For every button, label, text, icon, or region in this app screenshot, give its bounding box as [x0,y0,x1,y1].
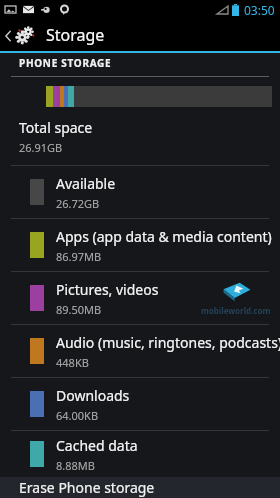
staticText: Pictures, videos [56,280,159,299]
button[interactable]: Total space [0,118,280,155]
staticText: Erase Phone storage [19,478,155,497]
staticText: Downloads [56,386,130,405]
button[interactable]: Audio (music, ringtones, podcasts) [0,325,280,377]
staticText: Total space [19,118,93,137]
staticText: 86.97MB [56,249,102,264]
staticText: 26.72GB [56,196,100,211]
button[interactable]: Pictures, videos [0,272,280,324]
staticText: 03:50 [244,2,275,18]
button[interactable]: Available [0,166,280,218]
staticText: Available [56,174,116,193]
button[interactable]: Downloads [0,378,280,430]
button[interactable]: Navigate up [0,24,39,47]
button[interactable]: Erase Phone storage [0,477,280,498]
staticText: mobileworld.com [201,305,271,316]
staticText: Cached data [56,436,138,455]
staticText: 26.91GB [19,140,63,155]
staticText: Audio (music, ringtones, podcasts) [56,333,280,352]
staticText: 8.88MB [56,458,95,473]
staticText: Apps (app data & media content) [56,227,272,246]
staticText: PHONE STORAGE [19,56,112,70]
staticText: 64.00KB [56,408,99,423]
staticText: Storage [46,24,105,46]
button[interactable]: Apps (app data & media content) [0,219,280,271]
staticText: 448KB [56,355,89,370]
staticText: 89.50MB [56,302,102,317]
button[interactable]: Cached data [0,431,280,477]
